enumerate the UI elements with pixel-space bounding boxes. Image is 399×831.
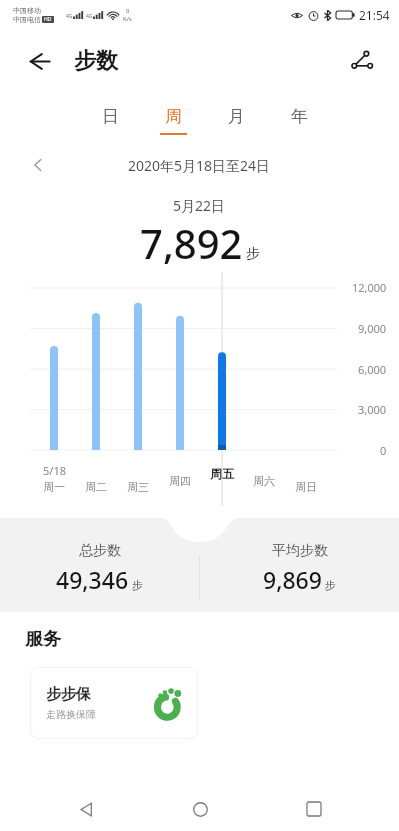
button[interactable]: Share [343, 42, 381, 80]
staticText: 21:54 [359, 7, 390, 23]
staticText: 中国电信 [13, 15, 41, 24]
button[interactable]: 周四 [169, 474, 191, 488]
staticText: 4G [66, 13, 73, 20]
staticText: 12,000 [352, 280, 387, 295]
button[interactable]: Back [53, 787, 119, 831]
staticText: 周一 [43, 480, 65, 494]
staticText: 0 [380, 443, 387, 458]
staticText: 9,000 [358, 321, 387, 336]
staticText: 步 [325, 578, 336, 592]
button[interactable]: Home [167, 787, 233, 831]
button[interactable]: Back [22, 44, 56, 78]
staticText: 服务 [25, 628, 61, 651]
button[interactable]: 周一 [43, 480, 65, 494]
staticText: 日 [102, 106, 119, 127]
staticText: 周四 [169, 474, 191, 488]
staticText: 5月22日 [173, 196, 226, 215]
button[interactable]: 周六 [253, 474, 275, 488]
staticText: 6,000 [358, 362, 387, 377]
staticText: 步步保 [46, 685, 91, 704]
staticText: 周三 [127, 480, 149, 494]
button[interactable]: 步步保 [30, 667, 198, 739]
button[interactable]: 月 [214, 92, 258, 146]
button[interactable]: 周日 [295, 480, 317, 494]
staticText: 平均步数 [272, 542, 328, 560]
button[interactable]: 年 [277, 92, 321, 146]
staticText: 总步数 [79, 542, 121, 560]
staticText: 周五 [210, 466, 234, 481]
button[interactable]: Previous week [23, 150, 53, 180]
staticText: 周六 [253, 474, 275, 488]
button[interactable]: 周二 [85, 480, 107, 494]
button[interactable]: 总步数 [0, 542, 199, 595]
button[interactable]: Recent apps [281, 787, 347, 831]
staticText: 4G [86, 13, 93, 20]
staticText: 49,346 [56, 564, 129, 595]
staticText: 5/18 [43, 463, 66, 478]
button[interactable]: 周三 [127, 480, 149, 494]
staticText: 周日 [295, 480, 317, 494]
staticText: 走路换保障 [46, 708, 96, 721]
staticText: 3,000 [358, 402, 387, 417]
staticText: 周二 [85, 480, 107, 494]
staticText: 周 [165, 106, 182, 127]
staticText: 步 [132, 578, 143, 592]
staticText: 0 [126, 7, 130, 15]
staticText: 年 [291, 106, 308, 127]
button[interactable]: 周五 [210, 466, 234, 481]
staticText: 9,869 [263, 564, 322, 595]
staticText: 步数 [74, 47, 118, 75]
staticText: K/s [123, 15, 132, 23]
staticText: HD [44, 16, 52, 23]
button[interactable]: 平均步数 [200, 542, 399, 595]
button[interactable]: 周 [151, 92, 195, 146]
staticText: 7,892 [140, 216, 243, 270]
staticText: 2020年5月18日至24日 [128, 156, 271, 175]
staticText: 中国移动 [13, 6, 41, 15]
button[interactable]: 日 [88, 92, 132, 146]
staticText: 月 [228, 106, 245, 127]
staticText: 步 [246, 245, 260, 263]
